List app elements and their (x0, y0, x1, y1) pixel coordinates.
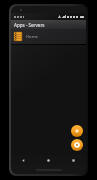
button[interactable]: Server (11, 29, 86, 44)
button[interactable]: Apps - Servers (11, 20, 86, 29)
button[interactable]: Back (11, 155, 36, 165)
staticText: Apps - Servers (14, 22, 45, 28)
button[interactable]: Add server (71, 125, 83, 137)
staticText: Home (26, 34, 38, 40)
button[interactable]: Recents (61, 155, 86, 165)
other: Server (14, 32, 22, 41)
button[interactable]: Settings (71, 139, 83, 151)
button[interactable]: Home (36, 155, 61, 165)
